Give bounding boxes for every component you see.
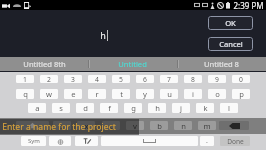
- button[interactable]: g: [124, 103, 142, 113]
- staticText: x: [84, 121, 89, 130]
- button[interactable]: Change language: [49, 136, 71, 146]
- button[interactable]: 6: [136, 75, 154, 83]
- button[interactable]: n: [174, 121, 192, 130]
- staticText: 0: [239, 75, 243, 83]
- button[interactable]: k: [196, 103, 214, 113]
- staticText: a: [35, 103, 40, 113]
- staticText: b: [157, 121, 162, 130]
- button[interactable]: 0: [232, 75, 250, 83]
- staticText: 8: [191, 75, 195, 83]
- button[interactable]: c: [102, 121, 120, 130]
- button[interactable]: z: [53, 121, 71, 130]
- button[interactable]: t: [112, 89, 130, 99]
- staticText: Untitled: [118, 59, 147, 69]
- staticText: 3: [71, 75, 75, 83]
- staticText: Enter a name for the project: [2, 121, 116, 133]
- staticText: r: [95, 89, 99, 99]
- staticText: u: [167, 89, 172, 99]
- staticText: f: [108, 103, 111, 113]
- staticText: e: [71, 89, 76, 99]
- staticText: 9: [215, 75, 219, 83]
- staticText: 1: [23, 75, 27, 83]
- staticText: s: [59, 103, 63, 113]
- staticText: 2:39 PM: [233, 0, 264, 10]
- button[interactable]: Handwriting: [75, 136, 98, 146]
- button[interactable]: u: [160, 89, 178, 99]
- staticText: h: [155, 103, 160, 113]
- button[interactable]: m: [198, 121, 216, 130]
- staticText: Cancel: [219, 39, 243, 49]
- button[interactable]: l: [220, 103, 238, 113]
- button[interactable]: o: [208, 89, 226, 99]
- button[interactable]: 5: [112, 75, 130, 83]
- button[interactable]: w: [40, 89, 58, 99]
- button[interactable]: 3: [64, 75, 82, 83]
- staticText: p: [239, 89, 244, 99]
- button[interactable]: Backspace: [219, 121, 249, 130]
- button[interactable]: Sym: [21, 136, 46, 146]
- button[interactable]: x: [77, 121, 95, 130]
- staticText: Sym: [28, 137, 40, 145]
- staticText: 5: [119, 75, 123, 83]
- button[interactable]: Untitled: [88, 57, 177, 71]
- staticText: l: [228, 103, 230, 113]
- button[interactable]: Space: [101, 136, 198, 146]
- button[interactable]: a: [28, 103, 46, 113]
- staticText: m: [203, 121, 211, 130]
- staticText: 4: [95, 75, 99, 83]
- staticText: 6: [143, 75, 147, 83]
- button[interactable]: 8: [184, 75, 202, 83]
- button[interactable]: s: [52, 103, 70, 113]
- staticText: i: [192, 89, 194, 99]
- staticText: g: [131, 103, 136, 113]
- button[interactable]: OK: [208, 16, 253, 30]
- staticText: d: [83, 103, 88, 113]
- button[interactable]: h: [148, 103, 166, 113]
- button[interactable]: 2: [40, 75, 58, 83]
- staticText: z: [60, 121, 64, 130]
- staticText: w: [46, 89, 52, 99]
- button[interactable]: v: [126, 121, 144, 130]
- staticText: Done: [227, 137, 244, 146]
- staticText: OK: [225, 18, 236, 28]
- staticText: v: [133, 121, 137, 130]
- staticText: h: [100, 29, 106, 41]
- button[interactable]: p: [232, 89, 250, 99]
- button[interactable]: 1: [16, 75, 34, 83]
- staticText: 2: [47, 75, 51, 83]
- staticText: .: [206, 136, 208, 146]
- button[interactable]: Done: [220, 136, 250, 146]
- staticText: y: [143, 89, 147, 99]
- button[interactable]: r: [88, 89, 106, 99]
- staticText: n: [181, 121, 186, 130]
- staticText: t: [120, 89, 123, 99]
- button[interactable]: 9: [208, 75, 226, 83]
- staticText: Untitled 8: [204, 59, 239, 69]
- button[interactable]: 7: [160, 75, 178, 83]
- button[interactable]: 4: [88, 75, 106, 83]
- button[interactable]: i: [184, 89, 202, 99]
- staticText: j: [180, 103, 182, 113]
- staticText: o: [215, 89, 220, 99]
- button[interactable]: j: [172, 103, 190, 113]
- button[interactable]: Cancel: [208, 37, 253, 51]
- button[interactable]: e: [64, 89, 82, 99]
- staticText: k: [203, 103, 208, 113]
- staticText: 7: [167, 75, 171, 83]
- button[interactable]: b: [150, 121, 168, 130]
- staticText: Untitled 8th: [23, 59, 66, 69]
- button[interactable]: f: [100, 103, 118, 113]
- button[interactable]: .: [200, 136, 214, 146]
- button[interactable]: Shift: [16, 121, 49, 130]
- staticText: c: [109, 121, 113, 130]
- button[interactable]: Untitled 8: [177, 57, 266, 71]
- button[interactable]: d: [76, 103, 94, 113]
- button[interactable]: y: [136, 89, 154, 99]
- staticText: q: [23, 89, 28, 99]
- button[interactable]: Untitled 8th: [0, 57, 88, 71]
- button[interactable]: q: [16, 89, 34, 99]
